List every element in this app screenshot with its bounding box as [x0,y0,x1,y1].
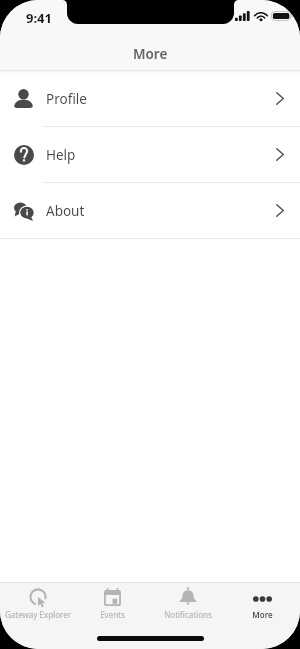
staticText: More [133,45,168,63]
staticText: Help [46,146,76,164]
button[interactable]: Profile [0,71,300,126]
button[interactable]: About [0,183,300,238]
button[interactable]: Gateway Explorer [0,583,75,649]
staticText: Profile [46,90,87,108]
staticText: About [46,202,85,220]
button[interactable]: Help [0,127,300,182]
staticText: 9:41 [26,9,52,27]
staticText: Notifications [164,609,212,620]
staticText: Events [100,609,125,620]
button[interactable]: More [225,583,300,649]
staticText: More [252,609,273,620]
button[interactable]: Notifications [150,583,225,649]
button[interactable]: Events [75,583,150,649]
staticText: Gateway Explorer [5,609,71,620]
